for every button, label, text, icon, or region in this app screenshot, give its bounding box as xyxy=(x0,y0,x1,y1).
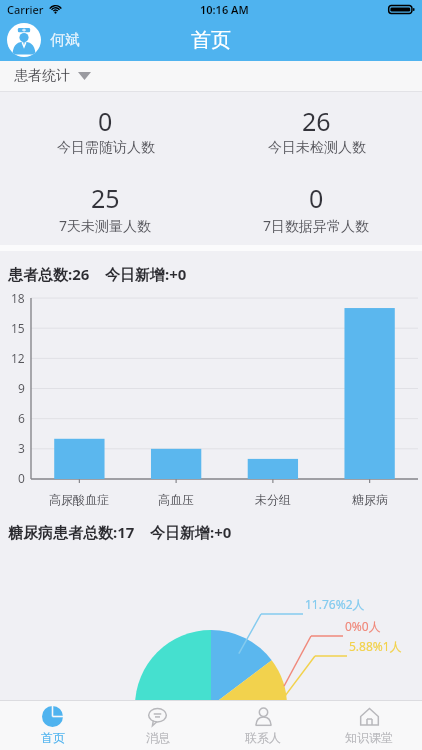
button[interactable]: 0 xyxy=(211,179,422,237)
staticText: 今日未检测人数 xyxy=(268,139,366,157)
staticText: 25 xyxy=(91,181,120,215)
staticText: 0%0人 xyxy=(345,618,381,634)
button[interactable]: 知识课堂 xyxy=(316,701,422,750)
staticText: 0 xyxy=(98,104,113,138)
staticText: 消息 xyxy=(146,730,170,745)
staticText: 未分组 xyxy=(255,492,291,507)
button[interactable]: 首页 xyxy=(0,701,105,750)
button[interactable]: 25 xyxy=(0,179,211,237)
staticText: 7天未测量人数 xyxy=(59,216,152,235)
staticText: 首页 xyxy=(191,28,231,53)
staticText: 0 xyxy=(309,181,324,215)
staticText: 3 xyxy=(18,440,25,456)
staticText: 7日数据异常人数 xyxy=(263,216,370,235)
staticText: 6 xyxy=(18,410,25,426)
staticText: 联系人 xyxy=(245,730,281,745)
staticText: 15 xyxy=(11,320,25,336)
button[interactable]: 联系人 xyxy=(210,701,316,750)
button[interactable]: 0 xyxy=(0,102,211,159)
staticText: Carrier xyxy=(7,2,44,17)
button[interactable]: Profile xyxy=(7,21,88,59)
other: Profile xyxy=(7,23,41,57)
staticText: 糖尿病患者总数:17 今日新增:+0 xyxy=(8,522,232,542)
staticText: 高血压 xyxy=(158,492,194,507)
button[interactable]: 患者统计 xyxy=(0,61,422,91)
staticText: 18 xyxy=(11,290,25,306)
staticText: 高尿酸血症 xyxy=(49,492,109,507)
staticText: 患者统计 xyxy=(14,67,70,85)
staticText: 首页 xyxy=(41,730,65,745)
staticText: 患者总数:26 今日新增:+0 xyxy=(8,264,187,284)
staticText: 何斌 xyxy=(50,31,80,50)
button[interactable]: 26 xyxy=(211,102,422,159)
staticText: 糖尿病 xyxy=(352,492,388,507)
staticText: 26 xyxy=(302,104,331,138)
staticText: 9 xyxy=(18,380,25,396)
staticText: 知识课堂 xyxy=(345,730,393,745)
staticText: 11.76%2人 xyxy=(305,596,365,612)
staticText: 0 xyxy=(18,470,25,486)
staticText: 5.88%1人 xyxy=(349,638,402,654)
button[interactable]: 消息 xyxy=(105,701,210,750)
staticText: 今日需随访人数 xyxy=(57,139,155,157)
staticText: 12 xyxy=(11,350,25,366)
staticText: 10:16 AM xyxy=(200,2,249,17)
